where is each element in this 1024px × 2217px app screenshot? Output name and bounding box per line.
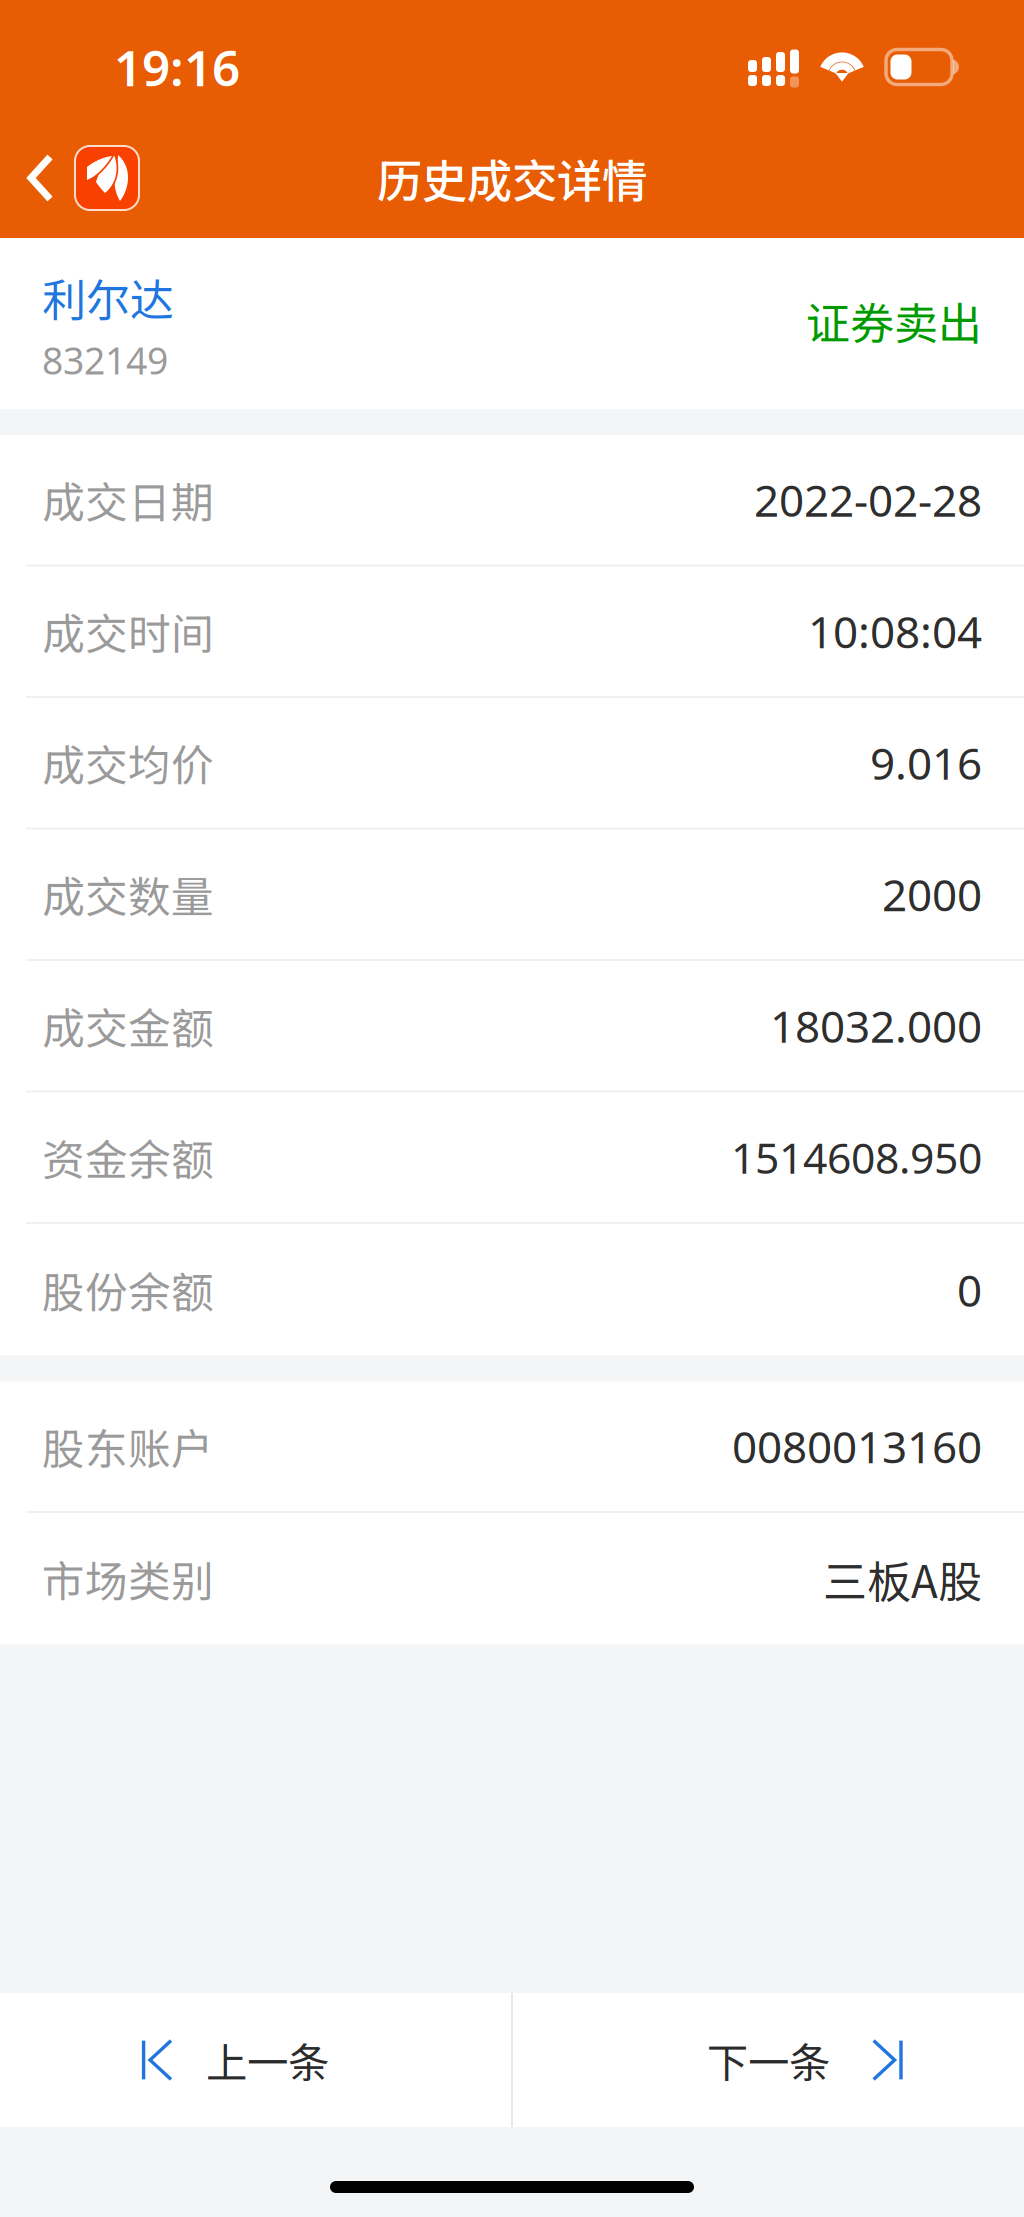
staticText: 成交日期 (42, 469, 214, 531)
staticText: 10:08:04 (808, 602, 982, 660)
staticText: 三板A股 (823, 1547, 982, 1611)
staticText: 18032.000 (770, 996, 982, 1055)
staticText: 资金余额 (42, 1126, 214, 1188)
staticText: 0 (957, 1260, 982, 1319)
staticText: 历史成交详情 (377, 145, 647, 211)
staticText: 成交数量 (42, 863, 214, 925)
staticText: 上一条 (206, 2030, 329, 2090)
staticText: 0080013160 (732, 1417, 982, 1475)
staticText: 1514608.950 (731, 1129, 982, 1186)
staticText: 832149 (42, 335, 168, 385)
staticText: 利尔达 (42, 265, 174, 329)
button[interactable]: Back (0, 118, 155, 238)
staticText: 成交均价 (42, 732, 214, 794)
staticText: 股份余额 (42, 1259, 214, 1321)
staticText: 证券卖出 (806, 289, 982, 352)
staticText: 2000 (882, 865, 982, 923)
staticText: 股东账户 (42, 1415, 214, 1477)
staticText: 19:16 (114, 34, 240, 100)
staticText: 2022-02-28 (754, 470, 982, 529)
staticText: 9.016 (870, 733, 982, 792)
staticText: 市场类别 (42, 1548, 214, 1610)
staticText: 成交时间 (42, 600, 214, 662)
staticText: 成交金额 (42, 995, 214, 1057)
button[interactable]: 利尔达 (0, 238, 1024, 409)
staticText: 下一条 (707, 2030, 830, 2090)
button[interactable]: 上一条 (0, 1993, 511, 2127)
button[interactable]: 下一条 (513, 1993, 1024, 2127)
